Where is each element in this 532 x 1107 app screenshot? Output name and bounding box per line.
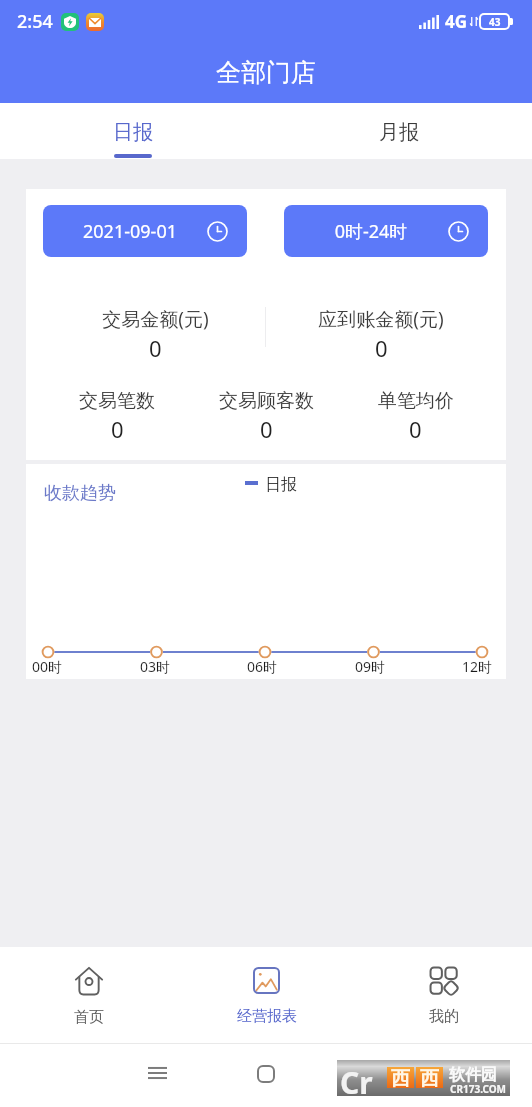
staticText: 0: [149, 333, 162, 363]
staticText: 12时: [457, 657, 497, 676]
button[interactable]: 月报: [266, 103, 532, 128]
staticText: 应到账金额(元): [318, 306, 444, 332]
button[interactable]: 经营报表: [178, 947, 355, 1026]
staticText: 0: [409, 414, 422, 444]
staticText: 2021-09-01: [43, 219, 217, 244]
staticText: 交易顾客数: [219, 389, 314, 413]
button[interactable]: 我的: [355, 947, 532, 1026]
staticText: Cr: [340, 1062, 373, 1098]
staticText: 0: [111, 414, 124, 444]
staticText: 0时-24时: [284, 219, 458, 244]
button[interactable]: 2021-09-01: [43, 205, 247, 257]
staticText: 00时: [27, 657, 67, 676]
staticText: 我的: [429, 1007, 459, 1026]
staticText: 06时: [242, 657, 282, 676]
staticText: 0: [260, 414, 273, 444]
staticText: 首页: [74, 1008, 104, 1027]
staticText: 月报: [379, 120, 419, 145]
staticText: 软件园: [449, 1065, 497, 1085]
button[interactable]: 首页: [0, 947, 178, 1027]
staticText: 43: [489, 15, 501, 28]
staticText: 交易金额(元): [102, 306, 209, 332]
other: Menu: [148, 1067, 167, 1079]
staticText: 2:54: [17, 9, 53, 34]
staticText: 单笔均价: [378, 389, 454, 413]
staticText: 经营报表: [237, 1007, 297, 1026]
staticText: 4G: [445, 10, 468, 33]
button[interactable]: 0时-24时: [284, 205, 488, 257]
staticText: 西: [420, 1067, 439, 1088]
staticText: 日报: [113, 120, 153, 145]
staticText: 西: [391, 1067, 410, 1088]
staticText: 全部门店: [216, 57, 316, 88]
other: Recents: [258, 1066, 274, 1082]
staticText: 交易笔数: [79, 389, 155, 413]
staticText: 收款趋势: [44, 482, 116, 505]
staticText: 03时: [135, 657, 175, 676]
staticText: 09时: [350, 657, 390, 676]
button[interactable]: 日报: [0, 103, 266, 128]
staticText: 日报: [265, 475, 297, 495]
staticText: CR173.COM: [450, 1082, 507, 1096]
staticText: 0: [375, 333, 388, 363]
